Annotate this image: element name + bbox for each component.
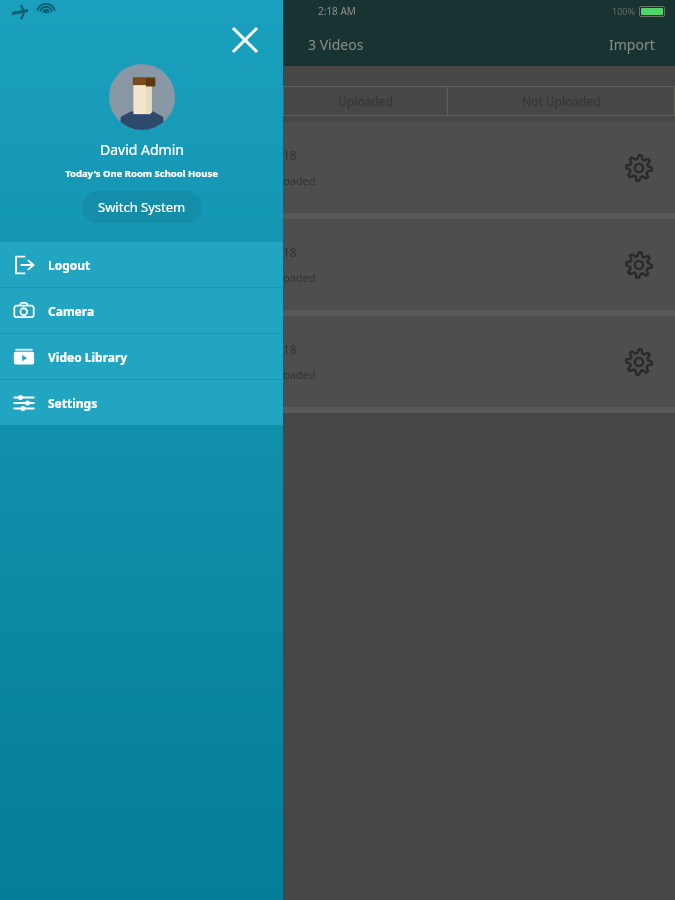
- staticText: 2:18 AM: [318, 4, 356, 18]
- button[interactable]: Video settings: [623, 346, 655, 378]
- button[interactable]: 18: [283, 122, 675, 213]
- button[interactable]: Close drawer: [227, 22, 263, 58]
- button[interactable]: Video settings: [623, 249, 655, 281]
- button[interactable]: Camera: [0, 288, 283, 333]
- staticText: Not Uploaded: [522, 93, 601, 109]
- staticText: Logout: [48, 257, 91, 273]
- staticText: oaded: [283, 367, 316, 382]
- staticText: 18: [283, 244, 297, 260]
- button[interactable]: Logout: [0, 242, 283, 287]
- button[interactable]: 18: [283, 219, 675, 310]
- staticText: Video Library: [48, 349, 128, 365]
- staticText: 18: [283, 341, 297, 357]
- button[interactable]: Uploaded: [283, 86, 447, 116]
- staticText: 18: [283, 147, 297, 163]
- button[interactable]: Import: [609, 35, 655, 54]
- button[interactable]: Switch System: [82, 191, 202, 223]
- staticText: 3 Videos: [308, 35, 364, 54]
- staticText: Settings: [48, 395, 98, 411]
- staticText: Today's One Room School House: [65, 167, 218, 180]
- button[interactable]: Video settings: [623, 152, 655, 184]
- staticText: David Admin: [100, 140, 184, 159]
- staticText: Camera: [48, 303, 95, 319]
- staticText: 100%: [612, 5, 635, 17]
- button[interactable]: Not Uploaded: [448, 86, 675, 116]
- button[interactable]: Video Library: [0, 334, 283, 379]
- staticText: oaded: [283, 173, 316, 188]
- staticText: oaded: [283, 270, 316, 285]
- button[interactable]: 18: [283, 316, 675, 407]
- staticText: Switch System: [98, 198, 186, 216]
- staticText: Uploaded: [338, 93, 393, 109]
- button[interactable]: Settings: [0, 380, 283, 425]
